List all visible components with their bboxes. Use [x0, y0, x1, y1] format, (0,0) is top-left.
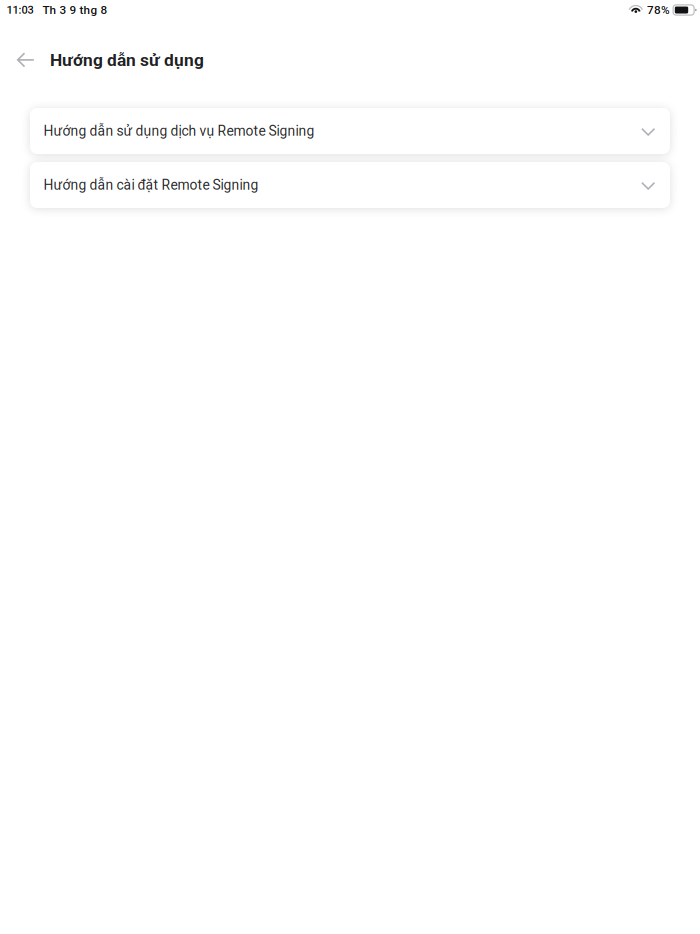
staticText: 78% [647, 3, 670, 17]
staticText: Hướng dẫn sử dụng dịch vụ Remote Signing [43, 123, 314, 139]
button[interactable]: Hướng dẫn cài đặt Remote Signing [30, 162, 670, 208]
button[interactable]: Back [8, 30, 43, 90]
staticText: Hướng dẫn cài đặt Remote Signing [43, 177, 258, 193]
staticText: 11:03 [6, 3, 33, 16]
staticText: Hướng dẫn sử dụng [50, 50, 204, 70]
button[interactable]: Hướng dẫn sử dụng dịch vụ Remote Signing [30, 108, 670, 154]
staticText: Th 3 9 thg 8 [42, 3, 107, 17]
